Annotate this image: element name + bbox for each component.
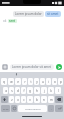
button[interactable]: s xyxy=(9,87,14,94)
staticText: t xyxy=(30,80,32,84)
button[interactable]: v xyxy=(27,96,33,103)
button[interactable]: Space xyxy=(18,105,47,112)
button[interactable]: n xyxy=(41,96,47,103)
staticText: Lorem ipsum dolor xyxy=(15,12,42,16)
button[interactable]: m xyxy=(48,96,54,103)
button[interactable]: i xyxy=(46,78,51,85)
button[interactable]: j xyxy=(41,87,47,94)
staticText: h xyxy=(36,89,38,93)
button[interactable]: Voice input xyxy=(15,73,18,76)
staticText: g xyxy=(29,89,31,93)
staticText: sent xyxy=(9,19,16,23)
staticText: ?123 xyxy=(3,107,9,110)
button[interactable]: a xyxy=(3,87,8,94)
button[interactable]: r xyxy=(22,78,27,85)
staticText: z xyxy=(11,98,13,102)
button[interactable]: Symbols xyxy=(1,105,10,112)
button[interactable]: f xyxy=(21,87,26,94)
staticText: i xyxy=(48,80,49,84)
button[interactable]: h xyxy=(34,87,40,94)
staticText: y xyxy=(36,80,38,84)
button[interactable]: sit amet xyxy=(45,11,61,17)
staticText: l xyxy=(58,89,59,93)
staticText: Lorem ipsum xyxy=(25,107,41,110)
button[interactable]: Enter xyxy=(55,105,63,112)
button[interactable]: Period xyxy=(48,105,54,112)
staticText: Lorem ipsum dolor sit amet xyxy=(12,65,51,69)
button[interactable]: Shift xyxy=(1,96,8,103)
button[interactable]: l xyxy=(55,87,61,94)
staticText: m xyxy=(50,98,53,102)
staticText: c xyxy=(23,98,25,102)
button[interactable]: e xyxy=(15,78,21,85)
button[interactable]: t xyxy=(28,78,33,85)
staticText: w xyxy=(10,80,13,84)
staticText: p xyxy=(60,80,62,84)
button[interactable]: k xyxy=(48,87,54,94)
button[interactable]: Attach xyxy=(2,64,8,70)
staticText: q xyxy=(3,80,5,84)
staticText: x xyxy=(17,98,19,102)
button[interactable]: Lorem ipsum dolor sit amet xyxy=(10,64,54,70)
staticText: k xyxy=(50,89,52,93)
button[interactable]: Lorem ipsum dolor xyxy=(13,11,44,17)
staticText: n xyxy=(43,98,45,102)
button[interactable]: u xyxy=(40,78,45,85)
button[interactable]: x xyxy=(15,96,20,103)
button[interactable]: d xyxy=(15,87,20,94)
staticText: e xyxy=(17,80,19,84)
staticText: f xyxy=(23,89,25,93)
button[interactable]: c xyxy=(21,96,26,103)
staticText: a xyxy=(5,89,7,93)
button[interactable]: g xyxy=(27,87,33,94)
button[interactable]: w xyxy=(8,78,14,85)
button[interactable]: z xyxy=(9,96,14,103)
button[interactable]: y xyxy=(34,78,39,85)
button[interactable]: b xyxy=(34,96,40,103)
staticText: . xyxy=(51,107,52,111)
button[interactable]: p xyxy=(58,78,63,85)
button[interactable]: o xyxy=(52,78,57,85)
staticText: b xyxy=(36,98,38,102)
button[interactable]: Send xyxy=(56,64,62,70)
staticText: r xyxy=(24,80,26,84)
staticText: d xyxy=(17,89,19,93)
staticText: ok xyxy=(3,19,7,23)
staticText: v xyxy=(29,98,31,102)
button[interactable]: q xyxy=(1,78,7,85)
button[interactable]: Backspace xyxy=(55,96,63,103)
button[interactable]: Emoji xyxy=(11,105,17,112)
staticText: u xyxy=(42,80,44,84)
staticText: sit amet xyxy=(47,12,59,16)
staticText: o xyxy=(54,80,56,84)
staticText: j xyxy=(44,89,45,93)
staticText: s xyxy=(11,89,13,93)
